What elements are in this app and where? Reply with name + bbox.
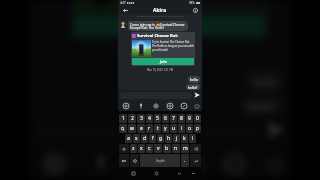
button[interactable]: v xyxy=(154,144,162,153)
button[interactable]: hello? xyxy=(188,85,198,89)
button[interactable]: m xyxy=(181,144,189,153)
staticText: hello? xyxy=(188,85,198,89)
button[interactable]: 2 xyxy=(128,114,136,123)
button[interactable]: Join xyxy=(73,15,265,36)
button[interactable]: Backspace xyxy=(190,144,201,153)
button[interactable]: hello xyxy=(253,74,278,89)
button[interactable]: p xyxy=(194,124,201,133)
button[interactable]: g xyxy=(157,134,164,143)
button[interactable]: a xyxy=(125,134,132,143)
button[interactable]: Microphone xyxy=(89,151,113,176)
staticText: j xyxy=(176,135,178,142)
button[interactable]: Enter xyxy=(190,154,201,167)
button[interactable]: Send xyxy=(193,91,201,99)
staticText: x xyxy=(140,145,143,152)
staticText: h xyxy=(167,135,171,142)
button[interactable]: y xyxy=(162,124,169,133)
button[interactable]: Hide keyboard xyxy=(190,170,197,177)
button[interactable]: Sticker xyxy=(152,102,160,110)
staticText: b xyxy=(165,145,169,152)
button[interactable]: Send xyxy=(262,117,287,142)
button[interactable]: 8 xyxy=(178,114,185,123)
button[interactable]: c xyxy=(146,144,153,153)
staticText: l xyxy=(192,135,194,142)
staticText: Mar 10, 2023 1:21 PM xyxy=(30,46,290,58)
button[interactable]: 6 xyxy=(162,114,169,123)
staticText: 1 xyxy=(122,115,125,122)
button[interactable]: Back xyxy=(121,6,129,14)
button[interactable]: Gallery xyxy=(42,151,67,176)
button[interactable]: 5 xyxy=(154,114,161,123)
staticText: 3 xyxy=(140,115,143,122)
button[interactable]: 1 xyxy=(119,114,127,123)
staticText: 8 xyxy=(180,115,183,122)
staticText: Survival Cheese Rat: xyxy=(137,33,179,39)
staticText: 0 xyxy=(196,115,199,122)
button[interactable]: f xyxy=(149,134,156,143)
button[interactable]: Gift xyxy=(180,102,188,110)
button[interactable]: 7 xyxy=(170,114,177,123)
staticText: m xyxy=(183,145,188,152)
button[interactable]: Camera xyxy=(179,151,203,176)
button[interactable]: l xyxy=(189,134,196,143)
staticText: . xyxy=(184,157,186,164)
button[interactable]: Emoji xyxy=(130,154,139,167)
staticText: 4:47 xyxy=(120,1,126,5)
button[interactable]: b xyxy=(163,144,171,153)
button[interactable]: Shift xyxy=(119,144,129,153)
button[interactable]: o xyxy=(186,124,193,133)
button[interactable]: w xyxy=(128,124,136,133)
staticText: Come join me in 🧀Survival Cheese Escape … xyxy=(130,22,186,30)
button[interactable]: k xyxy=(181,134,188,143)
button[interactable]: 3 xyxy=(137,114,145,123)
staticText: v xyxy=(157,145,160,152)
button[interactable]: s xyxy=(133,134,140,143)
button[interactable]: j xyxy=(173,134,180,143)
staticText: y xyxy=(164,125,167,132)
button[interactable]: Back xyxy=(176,170,183,177)
button[interactable]: i xyxy=(178,124,185,133)
button[interactable]: 9 xyxy=(186,114,193,123)
staticText: 9 xyxy=(188,115,191,122)
staticText: hello? xyxy=(247,98,278,111)
button[interactable]: hello xyxy=(190,77,198,82)
button[interactable]: Recents xyxy=(130,170,137,177)
button[interactable]: r xyxy=(146,124,153,133)
button[interactable]: Join xyxy=(132,58,194,65)
button[interactable]: z xyxy=(130,144,137,153)
staticText: u xyxy=(172,125,176,132)
button[interactable]: d xyxy=(141,134,148,143)
staticText: Messages and calls are end-to-end encryp… xyxy=(118,15,202,18)
button[interactable]: . xyxy=(181,154,189,167)
button[interactable]: Info xyxy=(191,6,199,14)
button[interactable]: h xyxy=(165,134,172,143)
button[interactable]: Microphone xyxy=(137,102,145,110)
staticText: f xyxy=(152,135,154,142)
button[interactable]: t xyxy=(154,124,161,133)
button[interactable]: Symbols xyxy=(119,154,129,167)
staticText: e xyxy=(140,125,143,132)
button[interactable]: More xyxy=(194,103,200,109)
button[interactable]: Camera xyxy=(166,102,174,110)
button[interactable]: Gallery xyxy=(122,102,130,110)
button[interactable]: hello? xyxy=(247,98,278,111)
button[interactable]: 0 xyxy=(194,114,201,123)
button[interactable]: Sticker xyxy=(135,151,160,176)
staticText: n xyxy=(174,145,178,152)
button[interactable] xyxy=(36,120,259,142)
button[interactable]: x xyxy=(138,144,145,153)
staticText: t xyxy=(157,125,159,132)
button[interactable]: Space xyxy=(140,154,180,167)
button[interactable]: 4 xyxy=(146,114,153,123)
button[interactable]: u xyxy=(170,124,177,133)
button[interactable]: e xyxy=(137,124,145,133)
staticText: p xyxy=(196,125,200,132)
button[interactable]: n xyxy=(172,144,180,153)
staticText: d xyxy=(143,135,147,142)
staticText: hello xyxy=(190,77,198,82)
button[interactable]: q xyxy=(119,124,127,133)
button[interactable]: Home xyxy=(153,170,160,177)
